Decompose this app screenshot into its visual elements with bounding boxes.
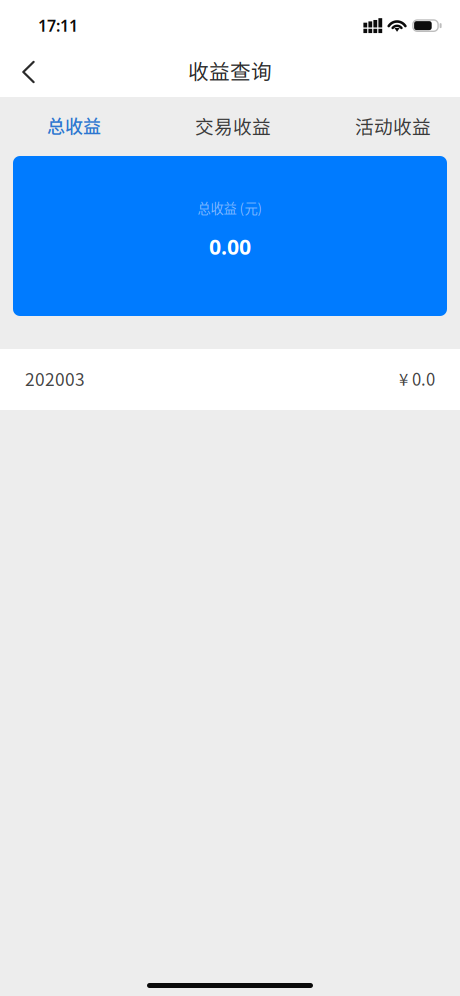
button[interactable]: 活动收益 xyxy=(326,97,460,156)
button[interactable]: 总收益 xyxy=(0,97,148,156)
staticText: 总收益 (元) xyxy=(197,198,262,217)
staticText: 202003 xyxy=(25,366,85,391)
button[interactable]: 202003 xyxy=(0,349,460,410)
staticText: 17:11 xyxy=(38,15,78,36)
staticText: ¥ 0.0 xyxy=(399,366,435,390)
staticText: 交易收益 xyxy=(195,112,271,139)
button[interactable]: 交易收益 xyxy=(148,97,318,156)
staticText: 0.00 xyxy=(209,232,251,261)
staticText: 收益查询 xyxy=(188,55,272,85)
staticText: 总收益 xyxy=(47,112,101,139)
staticText: 活动收益 xyxy=(355,112,431,139)
button[interactable]: Back xyxy=(0,48,51,96)
